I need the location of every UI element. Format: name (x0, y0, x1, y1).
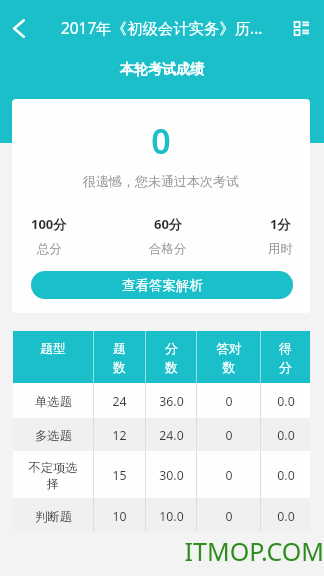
staticText: 答对 数 (216, 341, 242, 376)
staticText: 10 (112, 508, 127, 525)
staticText: 0 (225, 427, 233, 444)
staticText: 2017年《初级会计实务》历... (61, 18, 263, 39)
staticText: 总分 (37, 241, 62, 257)
staticText: 很遗憾，您未通过本次考试 (12, 173, 310, 189)
staticText: ITMOP.COM (0, 534, 324, 568)
staticText: 本轮考试成绩 (120, 61, 204, 79)
staticText: 0 (225, 467, 233, 484)
staticText: 60分 (154, 215, 182, 233)
staticText: 15 (112, 467, 127, 484)
staticText: 单选题 (35, 394, 72, 409)
staticText: 判断题 (35, 509, 72, 524)
staticText: 查看答案解析 (122, 277, 203, 294)
staticText: 24 (112, 393, 127, 410)
staticText: 0.0 (277, 427, 295, 444)
staticText: 0 (12, 118, 310, 164)
button[interactable]: 查看答案解析 (31, 271, 293, 299)
staticText: 得 分 (279, 341, 292, 376)
staticText: 0.0 (277, 508, 295, 525)
staticText: 用时 (268, 241, 293, 257)
staticText: 不定项选 择 (28, 460, 78, 492)
staticText: 0 (225, 508, 233, 525)
staticText: 0 (225, 393, 233, 410)
staticText: 1分 (270, 215, 291, 233)
staticText: 0.0 (277, 467, 295, 484)
staticText: 24.0 (159, 427, 184, 444)
button[interactable]: Question list (284, 0, 324, 52)
staticText: 100分 (31, 215, 67, 233)
button[interactable]: Back (0, 0, 36, 52)
staticText: 10.0 (159, 508, 184, 525)
staticText: 题型 (40, 341, 66, 357)
staticText: 0.0 (277, 393, 295, 410)
staticText: 36.0 (159, 393, 184, 410)
staticText: 多选题 (35, 428, 72, 443)
staticText: 合格分 (149, 241, 187, 257)
staticText: 题 数 (113, 341, 126, 376)
staticText: 12 (112, 427, 127, 444)
staticText: 分 数 (165, 341, 178, 376)
staticText: 30.0 (159, 467, 184, 484)
